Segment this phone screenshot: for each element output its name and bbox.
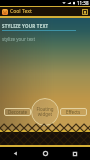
button[interactable]: Effects	[60, 108, 87, 116]
staticText: Effects	[66, 109, 81, 115]
staticText: stylize your text	[2, 36, 36, 42]
staticText: Floating widget	[36, 106, 54, 118]
button[interactable]: Back	[0, 147, 30, 160]
button[interactable]: Recent apps	[60, 147, 90, 160]
button[interactable]: STYLIZE YOUR TEXT	[2, 21, 78, 30]
staticText: 11:38	[77, 0, 89, 6]
button[interactable]: Decorate	[4, 108, 31, 116]
button[interactable]: Home	[30, 147, 60, 160]
staticText: STYLIZE YOUR TEXT	[2, 23, 49, 29]
button[interactable]: Floating widget	[31, 98, 59, 126]
staticText: Decorate	[8, 109, 28, 115]
staticText: Cool Text	[10, 8, 32, 15]
button[interactable]: Save image	[81, 8, 88, 15]
